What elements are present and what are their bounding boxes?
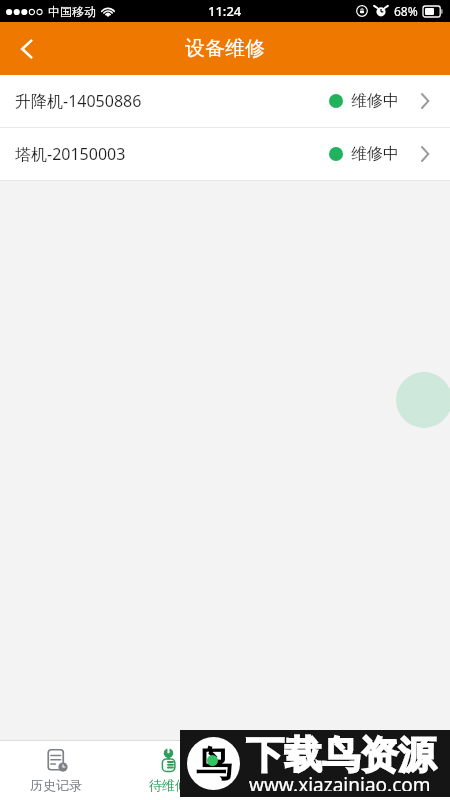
staticText: 历史记录 <box>30 777 82 793</box>
staticText: 维修中 <box>351 91 399 111</box>
staticText: 维修中 <box>351 144 399 164</box>
staticText: 待维修 <box>149 777 188 793</box>
button[interactable]: 维修中 <box>224 741 337 800</box>
staticText: 68% <box>394 3 418 19</box>
staticText: 鸟 <box>196 741 232 786</box>
button[interactable]: 历史记录 <box>0 741 112 800</box>
staticText: 设备维修 <box>185 36 265 61</box>
staticText: 维修中 <box>261 777 300 793</box>
staticText: 塔机-20150003 <box>15 143 126 165</box>
staticText: 下载鸟资源 <box>246 731 436 779</box>
staticText: 升降机-14050886 <box>15 90 142 112</box>
staticText: www.xiazainiao.com <box>249 772 431 791</box>
button[interactable]: 待维修 <box>112 741 224 800</box>
staticText: 中国移动 <box>48 4 96 19</box>
staticText: 11:24 <box>208 2 242 20</box>
button[interactable]: Back <box>0 22 53 75</box>
button[interactable]: 升降机-14050886 <box>0 75 450 128</box>
button[interactable]: 塔机-20150003 <box>0 128 450 181</box>
button[interactable]: 我的 <box>337 741 450 800</box>
button[interactable]: Add repair <box>396 372 450 428</box>
staticText: 我的 <box>381 777 407 793</box>
